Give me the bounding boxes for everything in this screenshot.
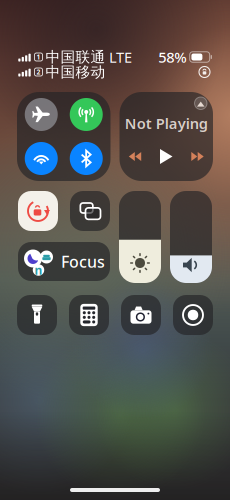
button[interactable]: Flashlight: [17, 295, 57, 335]
staticText: 2: [36, 68, 40, 76]
button[interactable]: Cellular Data: [70, 98, 103, 131]
staticText: 中国联通: [45, 48, 105, 66]
button[interactable]: Bluetooth: [70, 142, 103, 175]
button[interactable]: Rotation Lock: [18, 191, 58, 231]
staticText: LTE: [109, 47, 132, 67]
button[interactable]: Fast Forward: [191, 152, 204, 161]
button[interactable]: Brightness: [119, 191, 161, 283]
staticText: Not Playing: [125, 113, 208, 133]
button[interactable]: AirPlay: [194, 97, 207, 109]
button[interactable]: Screen Mirroring: [70, 191, 110, 231]
button[interactable]: Wi-Fi: [25, 142, 58, 175]
button[interactable]: Rewind: [128, 152, 141, 161]
button[interactable]: n: [18, 242, 110, 281]
staticText: Focus: [61, 251, 105, 272]
staticText: n: [34, 262, 42, 278]
staticText: 1: [36, 53, 40, 61]
staticText: 58%: [158, 47, 186, 67]
button[interactable]: Calculator: [69, 295, 109, 335]
button[interactable]: Camera: [121, 295, 161, 335]
button[interactable]: Screen Recording: [173, 295, 213, 335]
button[interactable]: Airplane Mode: [25, 98, 58, 131]
button[interactable]: Volume: [170, 191, 212, 283]
staticText: 中国移动: [45, 63, 105, 81]
button[interactable]: Play: [160, 149, 172, 164]
